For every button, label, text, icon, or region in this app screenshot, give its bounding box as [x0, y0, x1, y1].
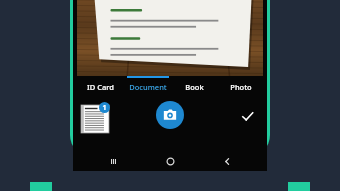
- button[interactable]: Book: [171, 76, 218, 98]
- button[interactable]: Scanned pages preview: [81, 105, 109, 133]
- button[interactable]: Back: [199, 150, 255, 172]
- button[interactable]: Capture: [156, 101, 184, 129]
- button[interactable]: Recents: [85, 150, 141, 172]
- button[interactable]: Home: [141, 150, 199, 172]
- staticText: ID Card: [87, 82, 114, 92]
- button[interactable]: Done: [238, 107, 256, 125]
- staticText: Document: [129, 82, 167, 92]
- button[interactable]: Document: [124, 76, 171, 98]
- button[interactable]: ID Card: [77, 76, 124, 98]
- staticText: Book: [185, 82, 204, 92]
- staticText: Photo: [230, 82, 252, 92]
- button[interactable]: Photo: [218, 76, 263, 98]
- staticText: 1: [102, 103, 107, 113]
